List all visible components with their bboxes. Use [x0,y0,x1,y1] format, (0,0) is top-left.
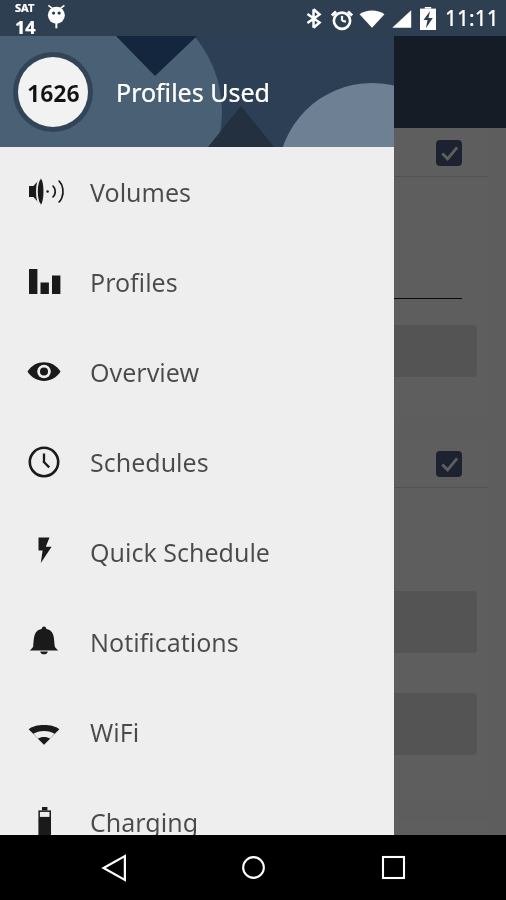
staticText: Volumes [90,175,191,209]
button[interactable]: Schedules [0,417,394,507]
staticText: Overview [90,355,200,389]
staticText: WiFi [90,715,140,749]
button[interactable]: Notifications [0,597,394,687]
staticText: Charging [90,805,199,839]
staticText: SAT [15,0,35,15]
staticText: Profiles [90,265,178,299]
button[interactable]: Back [85,835,145,900]
staticText: Quick Schedule [90,535,270,569]
button[interactable]: Overview [0,327,394,417]
staticText: 1626 [27,77,80,108]
button[interactable]: Quick Schedule [0,507,394,597]
staticText: Schedules [90,445,209,479]
staticText: Lorem ipsum dolor sit amet here. [36,530,318,555]
button[interactable]: Home [223,835,283,900]
staticText: Profiles Used [116,75,270,109]
staticText: 11:11 [445,4,499,33]
staticText: Notifications [90,625,239,659]
button[interactable]: Volumes [0,147,394,237]
staticText: 14 [15,15,36,36]
button[interactable]: WiFi [0,687,394,777]
button[interactable]: Recents [363,835,423,900]
button[interactable]: Charging [0,777,394,867]
button[interactable]: Profiles [0,237,394,327]
